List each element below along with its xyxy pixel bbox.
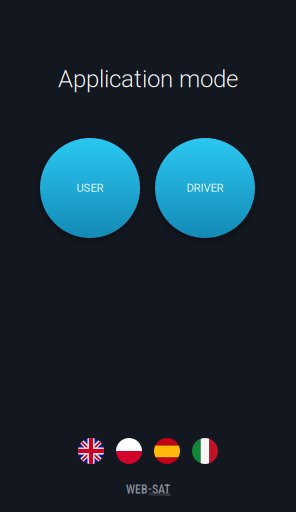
button[interactable]: DRIVER [155, 138, 255, 238]
staticText: WEB-SAT [126, 482, 170, 496]
button[interactable]: USER [40, 138, 140, 238]
staticText: Application mode [58, 65, 238, 93]
staticText: USER [76, 181, 103, 195]
staticText: DRIVER [186, 181, 223, 195]
button[interactable]: Polski [116, 438, 142, 464]
button[interactable]: Espanol [154, 438, 180, 464]
staticText: PROFESSIONAL [148, 492, 171, 497]
button[interactable]: English [78, 438, 104, 464]
button[interactable]: Italiano [192, 438, 218, 464]
